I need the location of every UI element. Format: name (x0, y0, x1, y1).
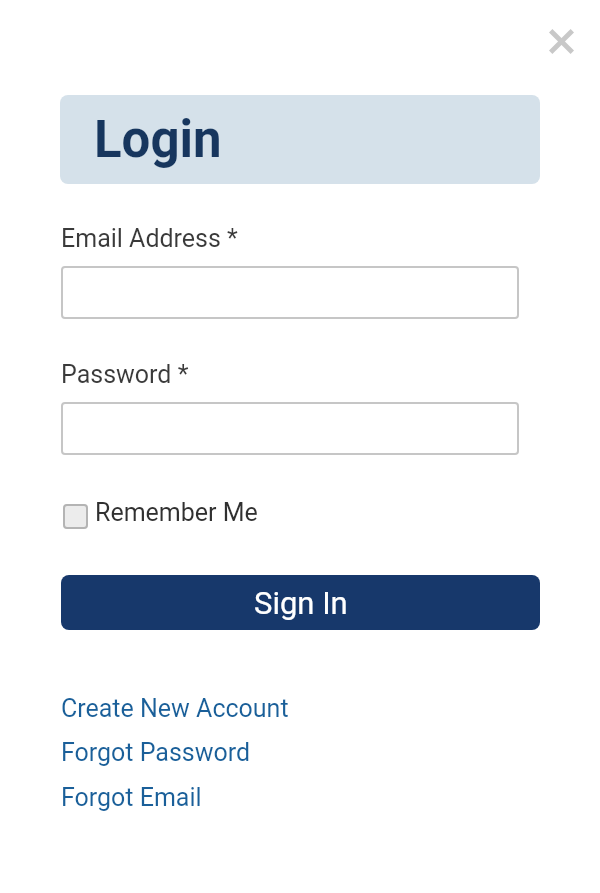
staticText: Email Address * (61, 224, 238, 253)
staticText: Password * (61, 360, 189, 389)
staticText: Sign In (254, 585, 348, 621)
staticText: Forgot Email (61, 783, 202, 812)
staticText: Login (94, 110, 222, 170)
staticText: Forgot Password (61, 738, 251, 767)
staticText: Create New Account (61, 694, 289, 723)
staticText: Remember Me (95, 498, 258, 527)
